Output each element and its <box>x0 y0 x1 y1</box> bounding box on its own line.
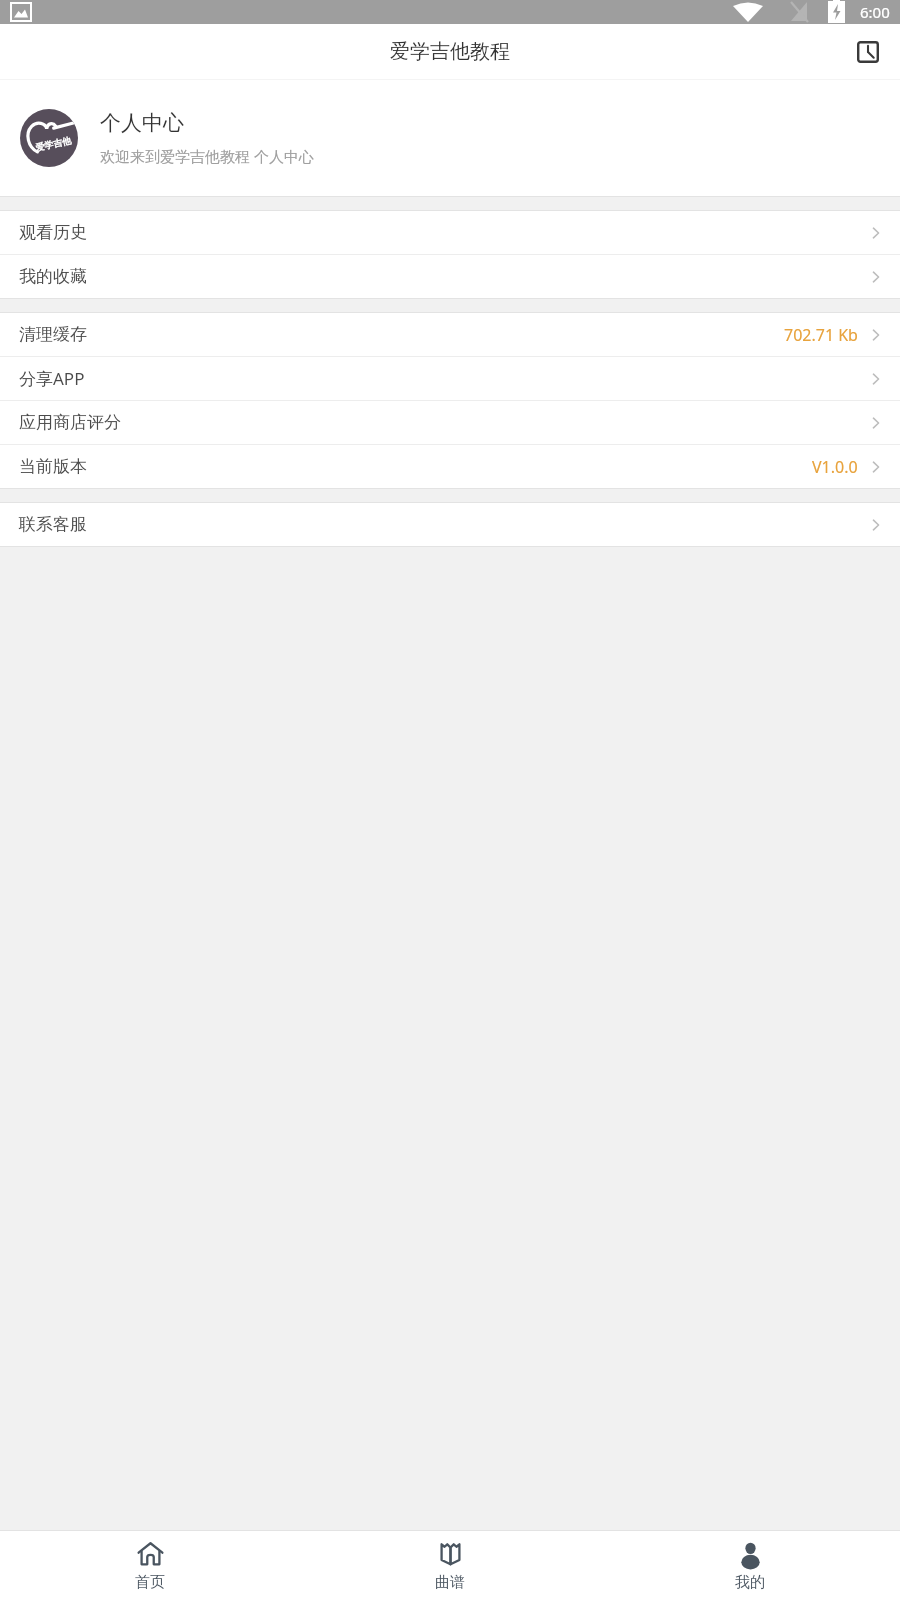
staticText: 爱学吉他教程 <box>390 39 510 64</box>
staticText: 当前版本 <box>19 456 87 477</box>
button[interactable]: 观看历史 <box>848 32 888 72</box>
staticText: 应用商店评分 <box>19 412 121 433</box>
staticText: 702.71 Kb <box>784 324 858 346</box>
staticText: 观看历史 <box>19 222 87 243</box>
staticText: V1.0.0 <box>812 456 858 478</box>
staticText: 我的收藏 <box>19 266 87 287</box>
button[interactable]: 观看历史 <box>0 211 900 254</box>
staticText: 欢迎来到爱学吉他教程 个人中心 <box>100 146 314 166</box>
staticText: 清理缓存 <box>19 324 87 345</box>
staticText: 曲谱 <box>435 1573 465 1592</box>
staticText: 分享APP <box>19 367 85 390</box>
button[interactable]: 当前版本 <box>0 445 900 488</box>
button[interactable]: 清理缓存 <box>0 313 900 356</box>
staticText: 首页 <box>135 1573 165 1592</box>
staticText: 我的 <box>735 1573 765 1592</box>
button[interactable]: 应用商店评分 <box>0 401 900 444</box>
staticText: 联系客服 <box>19 514 87 535</box>
staticText: 6:00 <box>860 2 890 22</box>
button[interactable]: 分享APP <box>0 357 900 400</box>
button[interactable]: 我的 <box>600 1531 900 1600</box>
button[interactable]: 首页 <box>0 1531 300 1600</box>
button[interactable]: 曲谱 <box>300 1531 600 1600</box>
staticText: 爱学吉他 <box>34 135 72 153</box>
button[interactable]: 联系客服 <box>0 503 900 546</box>
button[interactable]: 我的收藏 <box>0 255 900 298</box>
staticText: 个人中心 <box>100 110 184 136</box>
button[interactable]: 爱学吉他 <box>0 80 900 196</box>
